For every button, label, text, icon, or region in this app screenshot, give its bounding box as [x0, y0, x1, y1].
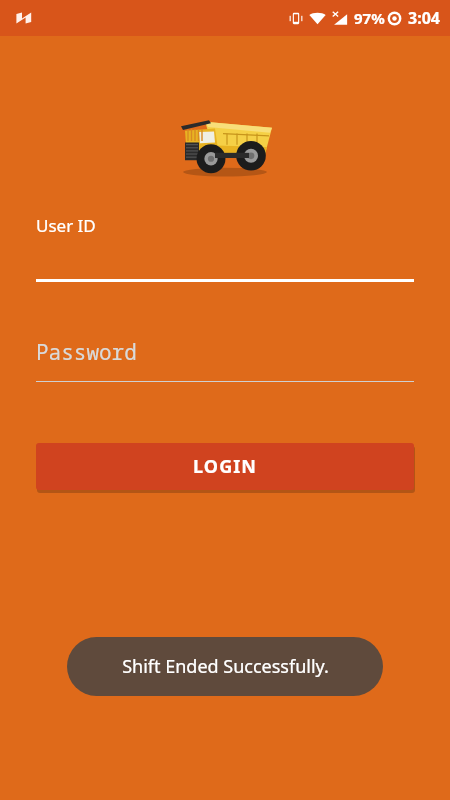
- staticText: 97%: [354, 8, 385, 28]
- staticText: Password: [36, 338, 137, 367]
- staticText: Shift Ended Successfully.: [122, 654, 329, 679]
- staticText: 3:04: [408, 7, 440, 29]
- staticText: LOGIN: [193, 454, 258, 479]
- staticText: User ID: [36, 214, 96, 237]
- button[interactable]: LOGIN: [36, 443, 414, 490]
